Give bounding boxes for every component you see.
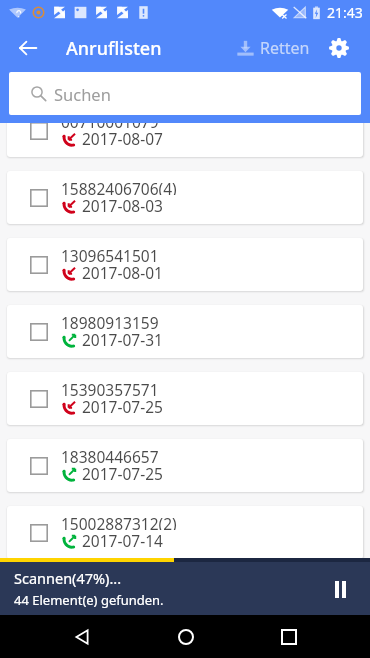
staticText: 2017-08-07 <box>82 128 163 145</box>
staticText: 2017-07-25 <box>82 396 163 413</box>
button[interactable]: Auswählen <box>30 256 48 274</box>
button[interactable]: Retten <box>233 31 314 65</box>
button[interactable]: Auswählen <box>7 305 363 358</box>
button[interactable]: Auswählen <box>7 123 363 157</box>
button[interactable]: Auswählen <box>7 372 363 425</box>
button[interactable]: Recents <box>267 615 310 658</box>
staticText: Anruflisten <box>66 36 162 61</box>
staticText: Suchen <box>54 83 111 105</box>
button[interactable]: Auswählen <box>30 524 48 542</box>
button[interactable]: Auswählen <box>30 123 48 140</box>
staticText: Scannen(47%)... <box>14 568 122 588</box>
staticText: 44 Element(e) gefunden. <box>14 591 164 609</box>
staticText: 18980913159 <box>61 312 159 329</box>
button[interactable]: Auswählen <box>30 457 48 475</box>
staticText: 2017-07-25 <box>82 463 163 480</box>
staticText: 13096541501 <box>61 245 159 262</box>
staticText: Retten <box>260 37 310 59</box>
button[interactable]: Einstellungen <box>317 26 361 70</box>
staticText: 2017-07-14 <box>82 530 163 547</box>
button[interactable]: Auswählen <box>7 506 363 558</box>
button[interactable]: Auswählen <box>7 238 363 291</box>
button[interactable]: Zurück <box>6 26 50 70</box>
staticText: 18380446657 <box>61 446 159 463</box>
staticText: 2017-08-03 <box>82 195 163 212</box>
button[interactable]: Auswählen <box>7 439 363 492</box>
button[interactable]: Auswählen <box>7 171 363 224</box>
staticText: 15002887312(2) <box>61 513 177 530</box>
button[interactable]: Auswählen <box>30 390 48 408</box>
staticText: 2017-07-31 <box>82 329 163 346</box>
staticText: 21:43 <box>327 3 363 22</box>
button[interactable]: Auswählen <box>30 323 48 341</box>
button[interactable]: Back <box>60 615 103 658</box>
staticText: 15882406706(4) <box>61 178 177 195</box>
button[interactable]: Pause <box>323 572 357 606</box>
button[interactable]: Auswählen <box>30 189 48 207</box>
staticText: 2017-08-01 <box>82 262 163 279</box>
button[interactable]: Suchen <box>9 72 361 115</box>
button[interactable]: Home <box>164 615 207 658</box>
staticText: 15390357571 <box>61 379 159 396</box>
staticText: 00710001079 <box>61 123 159 128</box>
